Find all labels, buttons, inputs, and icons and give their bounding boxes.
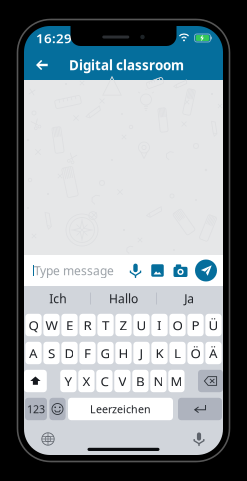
staticText: Ä [209,344,218,362]
staticText: C [100,372,108,390]
button[interactable]: G [97,342,114,364]
staticText: T [102,316,109,334]
staticText: Leerzeichen [90,402,151,416]
staticText: V [118,372,126,390]
staticText: E [66,316,73,334]
staticText: Ich [49,290,66,306]
staticText: Ü [208,316,218,334]
button[interactable]: O [169,314,186,336]
button[interactable]: N [150,370,166,392]
staticText: S [48,344,55,362]
staticText: I [157,316,162,334]
button[interactable]: R [79,314,96,336]
button[interactable]: T [97,314,114,336]
staticText: P [191,316,199,334]
staticText: R [83,316,91,334]
staticText: U [136,316,146,334]
staticText: Ja [184,290,194,306]
button[interactable]: Send [192,256,220,285]
button[interactable]: H [115,342,132,364]
button[interactable]: Q [25,314,42,336]
staticText: 16:29 [36,29,72,47]
staticText: Z [119,316,127,334]
staticText: O [172,316,182,334]
staticText: Digital classroom [69,56,184,74]
button[interactable]: Switch keyboard [32,428,64,450]
button[interactable]: Shift [24,370,47,392]
button[interactable]: S [43,342,60,364]
staticText: A [29,344,38,362]
button[interactable]: Take photo [169,257,192,283]
button[interactable]: J [133,342,150,364]
button[interactable]: Emoji [49,398,66,420]
button[interactable]: L [169,342,186,364]
staticText: W [45,316,57,334]
button[interactable]: Dictate [183,428,215,450]
button[interactable]: V [114,370,130,392]
button[interactable]: Ü [205,314,222,336]
button[interactable]: E [61,314,78,336]
staticText: Type message [34,262,114,278]
staticText: 123 [27,402,45,416]
staticText: F [84,344,91,362]
button[interactable]: Delete [198,370,223,392]
staticText: D [64,344,74,362]
button[interactable]: 123 [25,398,47,420]
button[interactable]: Ö [187,342,204,364]
button[interactable]: A [25,342,42,364]
staticText: Y [64,372,72,390]
staticText: M [170,372,182,390]
button[interactable]: M [168,370,184,392]
button[interactable]: Ich [25,287,90,310]
button[interactable]: B [132,370,148,392]
button[interactable]: P [187,314,204,336]
staticText: G [100,344,110,362]
staticText: H [118,344,128,362]
staticText: K [155,344,163,362]
staticText: Ö [190,344,200,362]
button[interactable]: Ä [205,342,222,364]
button[interactable]: Z [115,314,132,336]
button[interactable]: Hallo [91,287,156,310]
button[interactable]: I [151,314,168,336]
button[interactable]: K [151,342,168,364]
button[interactable]: Ja [157,287,222,310]
staticText: L [174,344,181,362]
button[interactable]: C [96,370,112,392]
button[interactable]: Record voice message [125,257,146,283]
button[interactable]: Back [24,50,60,80]
staticText: N [153,372,163,390]
staticText: Hallo [109,290,138,306]
button[interactable]: Leerzeichen [68,398,173,420]
button[interactable]: Y [60,370,76,392]
staticText: B [136,372,145,390]
button[interactable]: Return [178,398,222,420]
button[interactable]: D [61,342,78,364]
staticText: J [139,344,143,362]
staticText: X [82,372,90,390]
button[interactable]: W [43,314,60,336]
staticText: Q [28,316,38,334]
button[interactable]: U [133,314,150,336]
button[interactable]: Attach photo [146,257,169,283]
button[interactable]: F [79,342,96,364]
button[interactable]: X [78,370,94,392]
